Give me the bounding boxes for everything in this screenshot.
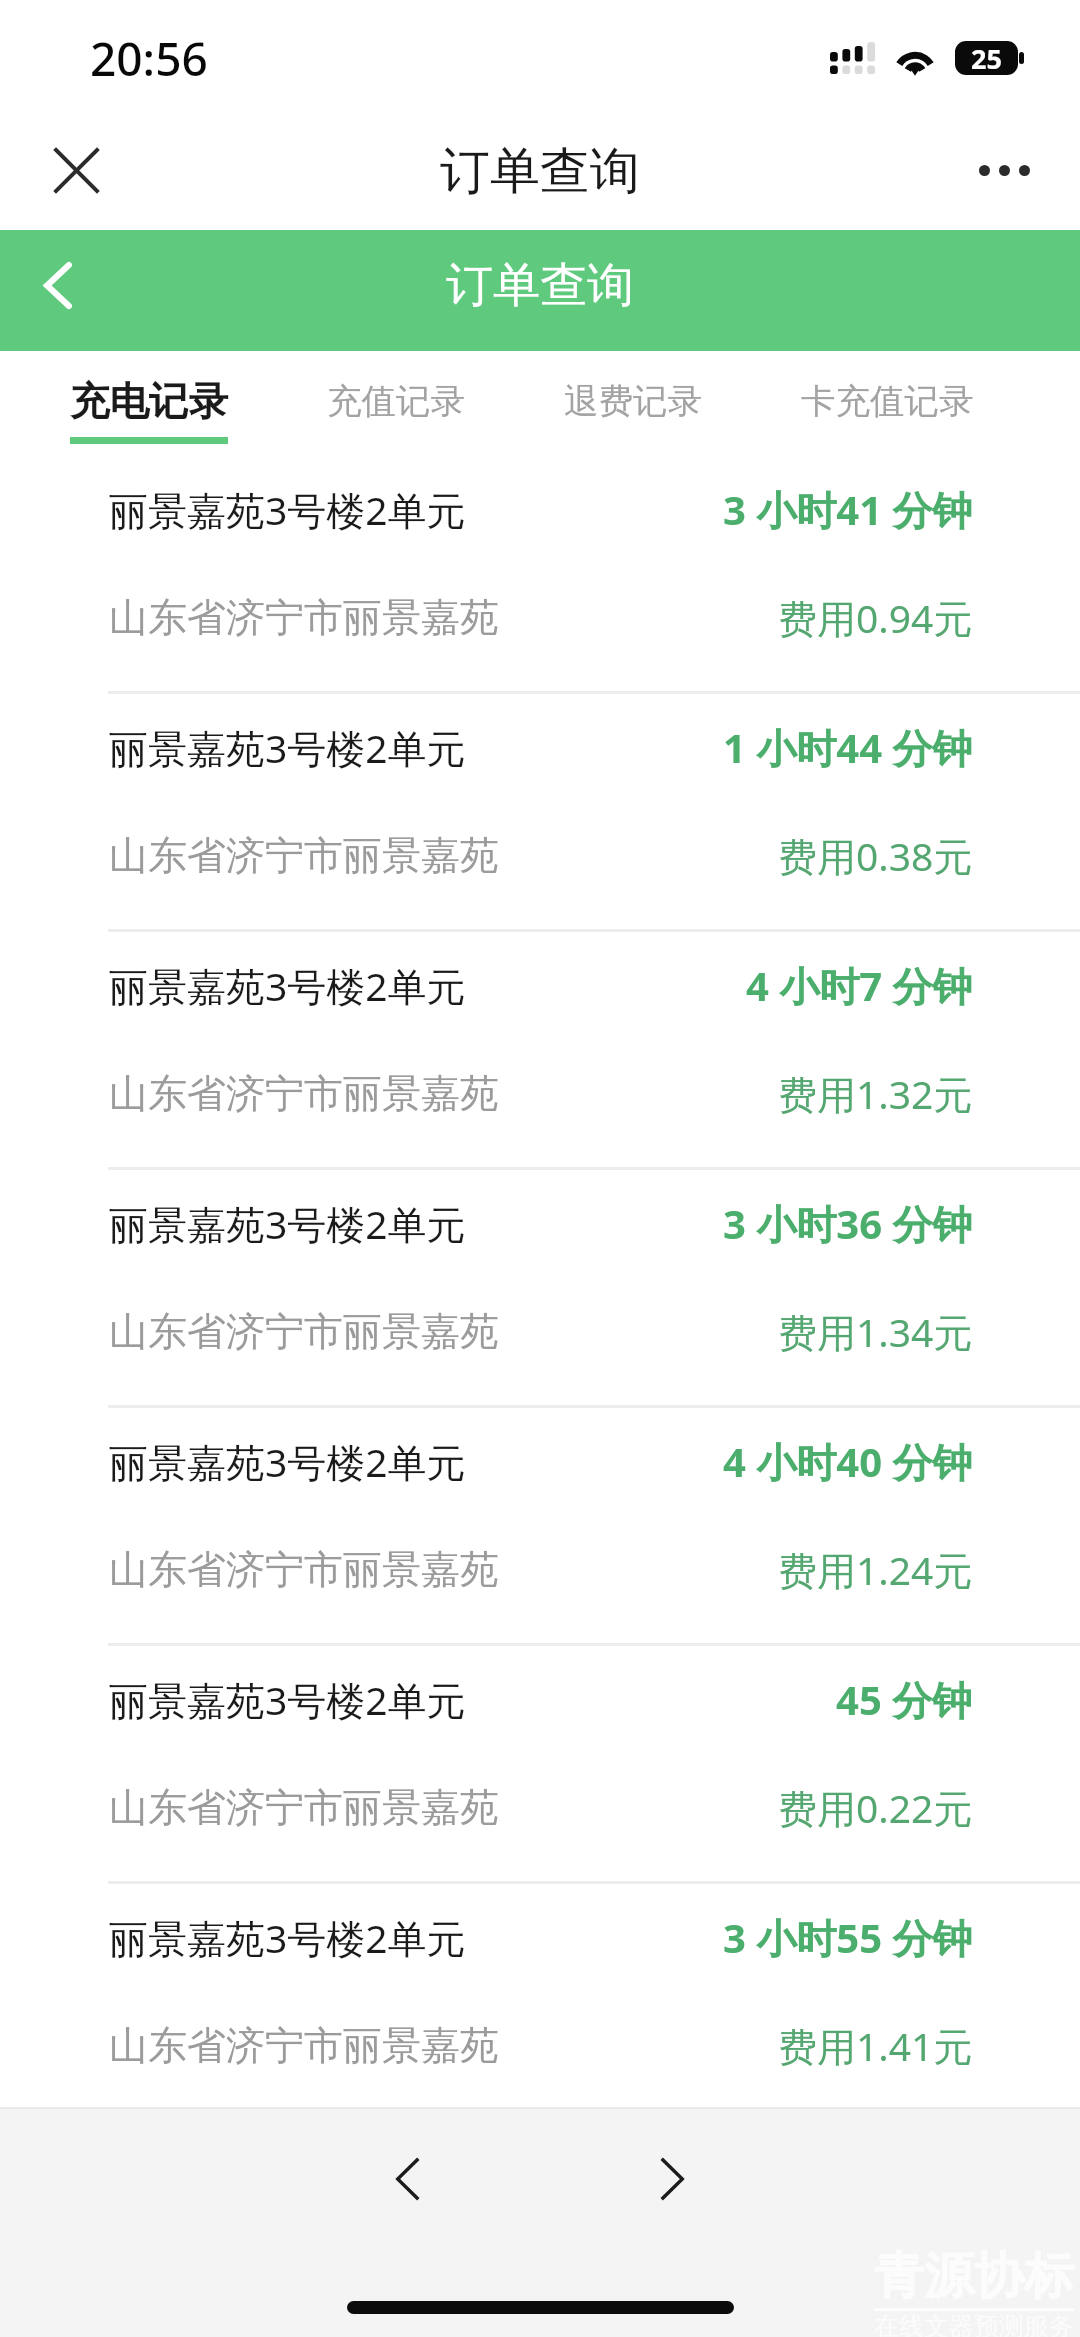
staticText: 费用1.32元 [778, 1067, 973, 1120]
staticText: 山东省济宁市丽景嘉苑 [109, 1069, 499, 1118]
button[interactable]: Previous page [358, 2129, 458, 2229]
staticText: 充值记录 [327, 380, 465, 423]
staticText: 1 小时44 分钟 [723, 720, 973, 775]
button[interactable]: 充值记录 [327, 351, 465, 454]
button[interactable]: 丽景嘉苑3号楼2单元 [0, 441, 1080, 679]
staticText: 费用0.94元 [778, 591, 973, 644]
button[interactable]: 丽景嘉苑3号楼2单元 [0, 917, 1080, 1155]
staticText: 费用0.22元 [778, 1781, 973, 1834]
staticText: 丽景嘉苑3号楼2单元 [109, 1673, 466, 1726]
staticText: 山东省济宁市丽景嘉苑 [109, 2021, 499, 2070]
staticText: 山东省济宁市丽景嘉苑 [109, 1545, 499, 1594]
staticText: 45 分钟 [836, 1672, 973, 1727]
staticText: 山东省济宁市丽景嘉苑 [109, 593, 499, 642]
button[interactable]: 充电记录 [70, 351, 228, 454]
staticText: 费用1.41元 [778, 2019, 973, 2072]
staticText: 丽景嘉苑3号楼2单元 [109, 959, 466, 1012]
staticText: 山东省济宁市丽景嘉苑 [109, 831, 499, 880]
staticText: 4 小时7 分钟 [746, 958, 973, 1013]
staticText: 丽景嘉苑3号楼2单元 [109, 1197, 466, 1250]
staticText: 充电记录 [70, 377, 228, 427]
button[interactable]: 丽景嘉苑3号楼2单元 [0, 1631, 1080, 1869]
staticText: 丽景嘉苑3号楼2单元 [109, 483, 466, 536]
staticText: 山东省济宁市丽景嘉苑 [109, 1307, 499, 1356]
staticText: 20:56 [90, 27, 208, 90]
staticText: 丽景嘉苑3号楼2单元 [109, 1911, 466, 1964]
staticText: 卡充值记录 [801, 380, 974, 423]
button[interactable]: 丽景嘉苑3号楼2单元 [0, 1155, 1080, 1393]
button[interactable]: Next page [622, 2129, 722, 2229]
button[interactable]: More options [954, 130, 1054, 210]
button[interactable]: Back [18, 235, 98, 335]
staticText: 丽景嘉苑3号楼2单元 [109, 1435, 466, 1488]
staticText: 青源协标 [874, 2245, 1074, 2308]
staticText: 3 小时41 分钟 [723, 482, 973, 537]
staticText: 订单查询 [440, 140, 640, 203]
staticText: 退费记录 [564, 380, 702, 423]
staticText: 费用1.24元 [778, 1543, 973, 1596]
button[interactable]: 卡充值记录 [801, 351, 974, 454]
button[interactable]: 退费记录 [564, 351, 702, 454]
button[interactable]: 丽景嘉苑3号楼2单元 [0, 1869, 1080, 2107]
staticText: 3 小时36 分钟 [723, 1196, 973, 1251]
staticText: 25 [971, 41, 1002, 74]
button[interactable]: 丽景嘉苑3号楼2单元 [0, 1393, 1080, 1631]
button[interactable]: Close [26, 120, 126, 220]
button[interactable]: 丽景嘉苑3号楼2单元 [0, 679, 1080, 917]
staticText: 丽景嘉苑3号楼2单元 [109, 721, 466, 774]
staticText: 山东省济宁市丽景嘉苑 [109, 1783, 499, 1832]
staticText: 4 小时40 分钟 [723, 1434, 973, 1489]
staticText: 3 小时55 分钟 [723, 1910, 973, 1965]
staticText: 费用1.34元 [778, 1305, 973, 1358]
staticText: 费用0.38元 [778, 829, 973, 882]
staticText: 订单查询 [446, 256, 634, 315]
